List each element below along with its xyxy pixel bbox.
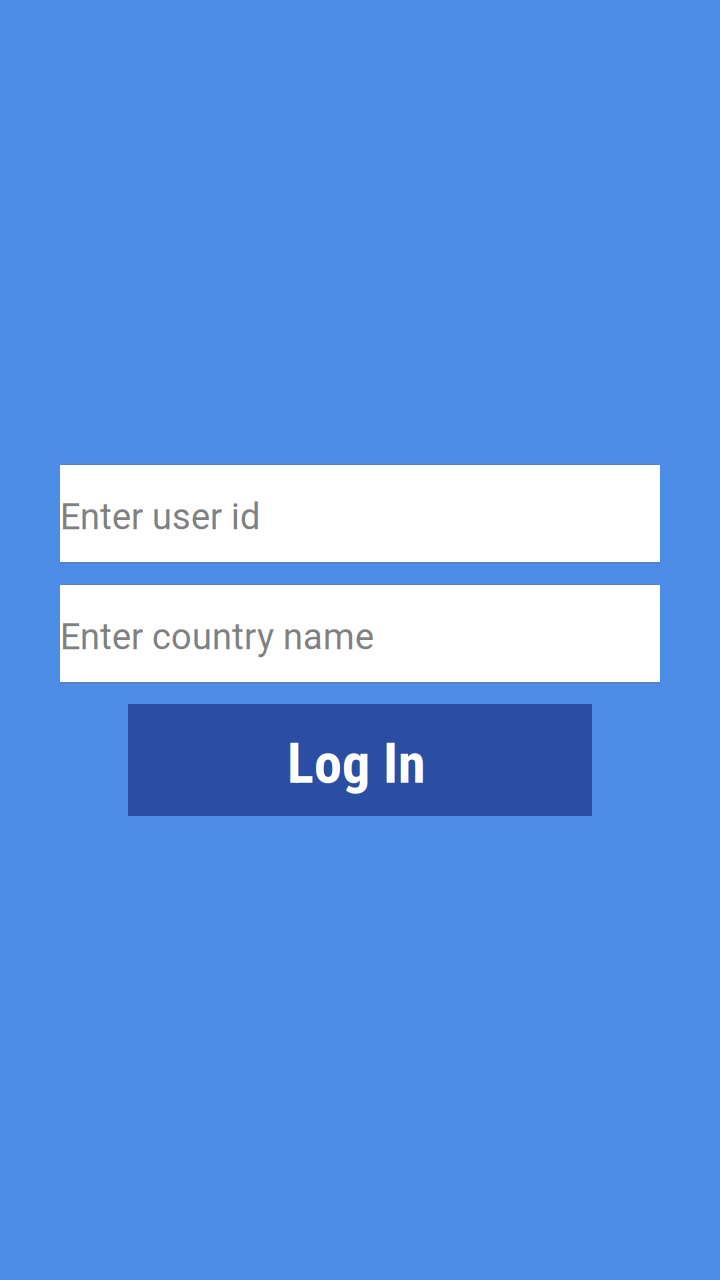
button[interactable]: Log In <box>128 704 592 816</box>
button[interactable]: Enter user id <box>60 464 660 564</box>
staticText: Enter user id <box>60 496 260 538</box>
staticText: Log In <box>287 731 426 796</box>
staticText: Enter country name <box>60 616 374 658</box>
button[interactable]: Enter country name <box>60 584 660 684</box>
